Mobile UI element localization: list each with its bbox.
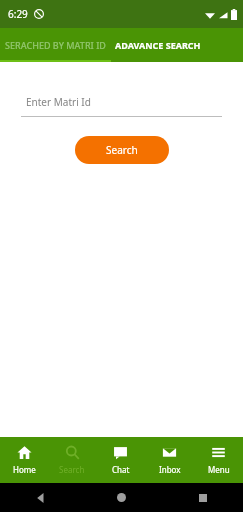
button[interactable]: Search: [48, 437, 96, 483]
staticText: ADAVANCE SEARCH: [115, 39, 201, 51]
button[interactable]: Back: [0, 483, 81, 512]
button[interactable]: ADAVANCE SEARCH: [111, 28, 243, 62]
staticText: SERACHED BY MATRI ID: [5, 39, 106, 51]
staticText: Chat: [112, 464, 130, 475]
staticText: Enter Matri Id: [26, 95, 91, 109]
staticText: 6:29: [8, 7, 28, 21]
staticText: Search: [106, 143, 138, 157]
staticText: Search: [59, 464, 85, 475]
staticText: Menu: [208, 464, 230, 475]
button[interactable]: Home: [81, 483, 162, 512]
button[interactable]: Inbox: [145, 437, 194, 483]
staticText: Home: [13, 464, 36, 475]
staticText: Inbox: [159, 464, 181, 475]
button[interactable]: SERACHED BY MATRI ID: [0, 28, 111, 62]
button[interactable]: Enter Matri Id: [21, 95, 222, 117]
button[interactable]: Menu: [194, 437, 243, 483]
button[interactable]: Chat: [96, 437, 145, 483]
button[interactable]: Recent apps: [162, 483, 243, 512]
button[interactable]: Home: [0, 437, 48, 483]
button[interactable]: Search: [75, 136, 169, 164]
